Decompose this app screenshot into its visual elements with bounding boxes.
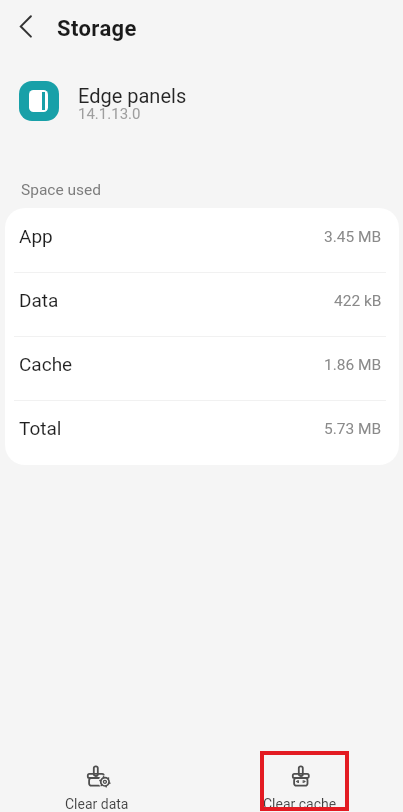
staticText: 1.86 MB: [324, 356, 382, 374]
staticText: Data: [19, 289, 59, 311]
staticText: Total: [19, 417, 62, 439]
staticText: Cache: [19, 353, 73, 375]
staticText: 422 kB: [334, 292, 382, 310]
staticText: Clear data: [65, 796, 129, 812]
button[interactable]: Clear data: [42, 764, 152, 812]
staticText: 14.1.13.0: [78, 105, 141, 123]
button[interactable]: Clear cache: [245, 764, 355, 812]
staticText: Space used: [21, 181, 102, 199]
staticText: Clear cache: [263, 796, 337, 812]
staticText: Edge panels: [78, 84, 187, 107]
staticText: App: [19, 225, 53, 247]
staticText: 5.73 MB: [324, 420, 382, 438]
staticText: Storage: [57, 16, 137, 42]
button[interactable]: [11, 12, 39, 40]
staticText: 3.45 MB: [324, 228, 382, 246]
